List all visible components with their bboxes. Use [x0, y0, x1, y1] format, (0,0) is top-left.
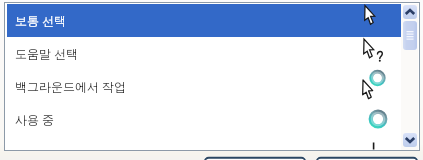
- button[interactable]: Scroll up: [403, 5, 417, 19]
- button[interactable]: 백그라운드에서 작업: [7, 70, 401, 103]
- button[interactable]: OK: [204, 157, 306, 160]
- other: Cursor previews: [356, 3, 402, 150]
- staticText: 사용 중: [15, 111, 55, 127]
- staticText: 보통 선택: [15, 12, 67, 28]
- staticText: 도움말 선택: [15, 45, 79, 61]
- button[interactable]: Cancel: [316, 157, 418, 160]
- staticText: 백그라운드에서 작업: [15, 78, 127, 94]
- button[interactable]: 사용 중: [7, 103, 401, 136]
- button[interactable]: Scroll down: [403, 133, 417, 147]
- button[interactable]: 도움말 선택: [7, 37, 401, 70]
- button[interactable]: Scroll thumb: [403, 21, 417, 50]
- button[interactable]: 보통 선택: [7, 4, 401, 37]
